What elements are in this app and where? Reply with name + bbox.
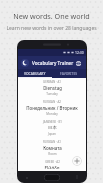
staticText: Room [48, 152, 57, 156]
button[interactable]: Home [44, 174, 60, 181]
button[interactable]: JAPANESE · B1 [18, 118, 86, 138]
staticText: Japan [48, 132, 56, 136]
staticText: Комната [43, 145, 62, 151]
staticText: 日本 [48, 125, 57, 131]
staticText: Vocabulary Trainer [32, 60, 74, 66]
button[interactable]: Language [74, 59, 82, 67]
staticText: GREEK · A2 [45, 160, 60, 164]
staticText: Понедельник / Вторник [26, 105, 78, 111]
button[interactable]: App logo [21, 59, 29, 67]
button[interactable]: VOCABULARY [18, 69, 52, 77]
button[interactable]: GERMAN · A1 [18, 78, 86, 98]
staticText: Dienstag [43, 85, 62, 91]
staticText: RUSSIAN · A1 [43, 140, 61, 144]
staticText: VOCABULARY [24, 71, 46, 75]
button[interactable]: RUSSIAN · A1 [18, 138, 86, 158]
staticText: New words. One world [13, 11, 90, 21]
staticText: FAVORITES [60, 71, 78, 75]
staticText: 12:30 [75, 50, 84, 55]
button[interactable]: RUSSIAN · A2 [18, 98, 86, 118]
staticText: Ελλάδα [44, 165, 60, 169]
button[interactable]: GREEK · A2 [18, 158, 86, 171]
button[interactable]: FAVORITES [52, 69, 86, 77]
staticText: RUSSIAN · A2 [43, 100, 61, 104]
button[interactable]: Add word [72, 156, 82, 166]
staticText: Learn new words in over 28 languages [6, 25, 97, 32]
staticText: Monday [46, 112, 58, 116]
staticText: Tuesday [46, 92, 58, 96]
staticText: JAPANESE · B1 [43, 120, 62, 124]
staticText: GERMAN · A1 [43, 80, 61, 84]
